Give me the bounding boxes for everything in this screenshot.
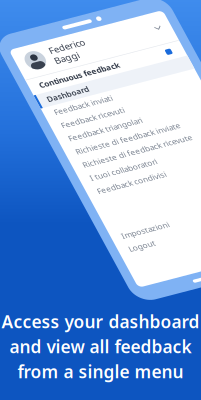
staticText: Baggi (45, 32, 70, 45)
staticText: Continuous feedback (19, 54, 102, 64)
button[interactable]: Impostazioni (9, 224, 168, 239)
button[interactable]: Dashboard (9, 68, 168, 83)
staticText: Feedback inviati (19, 85, 79, 95)
staticText: Dashboard (19, 70, 62, 80)
staticText: Richieste di feedback ricevute (19, 145, 132, 155)
button[interactable]: Feedback condivisi (9, 173, 168, 188)
button[interactable]: Feedback ricevuti (9, 98, 168, 113)
staticText: I tuoi collaboratori (19, 160, 88, 170)
staticText: Feedback condivisi (19, 175, 90, 185)
button[interactable]: Richieste di feedback ricevute (9, 143, 168, 158)
button[interactable]: Federico (9, 16, 168, 50)
staticText: Feedback triangolari (19, 115, 95, 125)
staticText: Federico (45, 21, 82, 33)
staticText: Access your dashboard (1, 310, 199, 333)
staticText: from a single menu (17, 360, 183, 383)
button[interactable]: Feedback triangolari (9, 113, 168, 128)
staticText: Richieste di feedback inviate (19, 130, 127, 140)
staticText: Feedback ricevuti (19, 100, 84, 110)
staticText: and view all feedback (9, 335, 191, 358)
button[interactable]: Feedback inviati (9, 83, 168, 98)
button[interactable]: Logout (9, 239, 168, 254)
button[interactable]: Richieste di feedback inviate (9, 128, 168, 143)
button[interactable]: I tuoi collaboratori (9, 158, 168, 173)
